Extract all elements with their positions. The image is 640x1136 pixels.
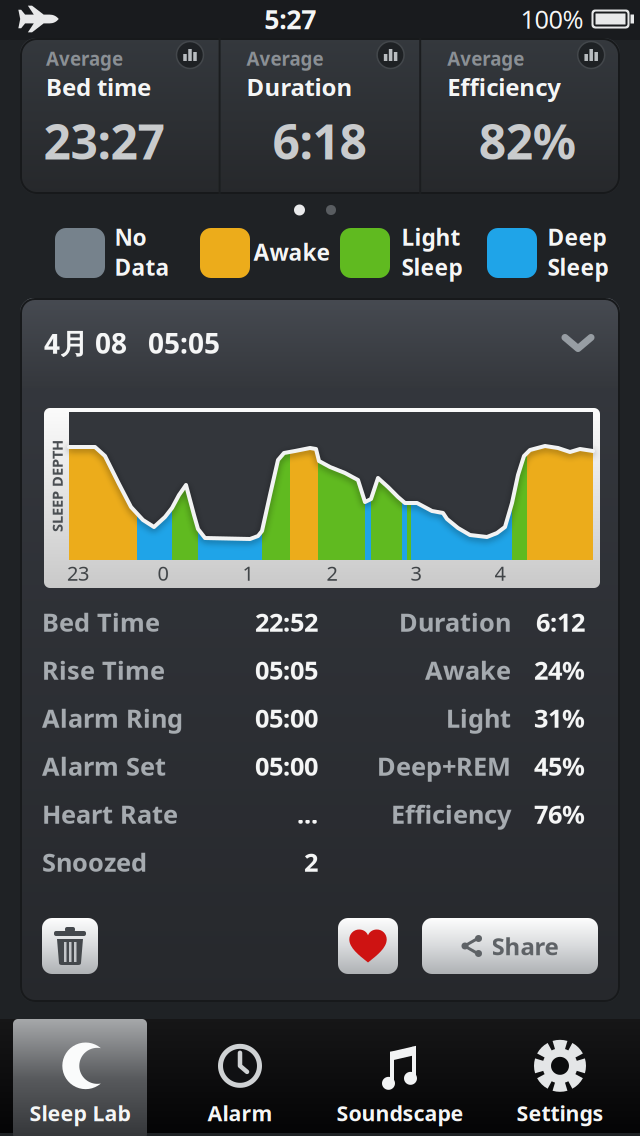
staticText: Alarm (207, 1099, 272, 1127)
staticText: 05:05 (255, 653, 318, 687)
staticText: No (114, 222, 146, 252)
staticText: 6:12 (536, 605, 585, 639)
staticText: 5:27 (264, 1, 316, 37)
button[interactable]: Sleep Lab (0, 1019, 160, 1133)
staticText: Deep (547, 222, 606, 252)
staticText: Average (247, 46, 324, 71)
staticText: Awake (253, 237, 330, 267)
staticText: 2 (304, 845, 318, 879)
staticText: 24% (534, 653, 585, 687)
staticText: Data (114, 252, 169, 282)
staticText: 2 (326, 560, 337, 586)
staticText: Efficiency (447, 71, 561, 103)
staticText: 6:18 (273, 109, 367, 173)
button[interactable]: Statistics (578, 41, 605, 68)
staticText: 4月 08 05:05 (44, 324, 220, 362)
staticText: Duration (399, 605, 511, 639)
staticText: 05:00 (255, 749, 318, 783)
staticText: 45% (534, 749, 585, 783)
staticText: Light (401, 222, 460, 252)
staticText: 1 (242, 560, 253, 586)
staticText: 4 (494, 560, 505, 586)
staticText: Sleep (401, 252, 462, 282)
button[interactable]: Delete (42, 918, 98, 974)
staticText: 31% (534, 701, 585, 735)
button[interactable]: Soundscape (320, 1019, 480, 1133)
staticText: 76% (534, 797, 585, 831)
staticText: Alarm Set (42, 749, 166, 783)
button[interactable]: 4月 08 05:05 (20, 298, 620, 388)
button[interactable]: Settings (480, 1019, 640, 1133)
staticText: Average (447, 46, 524, 71)
staticText: Share (491, 930, 558, 962)
staticText: Alarm Ring (42, 701, 183, 735)
staticText: Rise Time (42, 653, 165, 687)
staticText: Snoozed (42, 845, 147, 879)
button[interactable]: Statistics (176, 41, 203, 68)
staticText: Efficiency (391, 797, 511, 831)
staticText: 3 (410, 560, 421, 586)
staticText: Bed Time (42, 605, 160, 639)
staticText: Light (446, 701, 511, 735)
staticText: Sleep (547, 252, 608, 282)
staticText: 23 (67, 560, 89, 586)
staticText: Sleep Lab (29, 1099, 130, 1127)
staticText: 0 (157, 560, 168, 586)
staticText: Settings (516, 1099, 603, 1127)
staticText: Heart Rate (42, 797, 178, 831)
staticText: 100% (520, 2, 583, 36)
staticText: Average (46, 46, 123, 71)
staticText: Awake (425, 653, 511, 687)
button[interactable]: Share (422, 918, 598, 974)
staticText: ... (297, 797, 318, 831)
button[interactable]: Statistics (377, 41, 404, 68)
staticText: 23:27 (43, 109, 164, 173)
button[interactable]: Alarm (160, 1019, 320, 1133)
staticText: 05:00 (255, 701, 318, 735)
staticText: SLEEP DEPTH (11, 476, 103, 496)
button[interactable]: Favorite (338, 918, 398, 974)
staticText: Bed time (46, 71, 151, 103)
staticText: 22:52 (255, 605, 318, 639)
staticText: Duration (247, 71, 353, 103)
staticText: 82% (479, 109, 576, 173)
staticText: Deep+REM (377, 749, 511, 783)
staticText: Soundscape (336, 1099, 463, 1127)
